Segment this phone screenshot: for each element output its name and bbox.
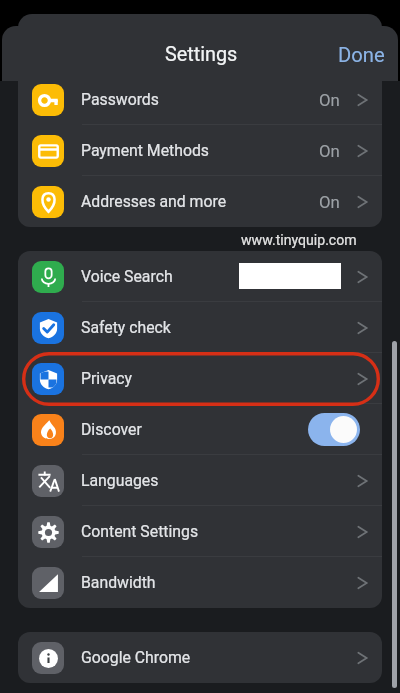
button[interactable]: Discover toggle [308,413,360,446]
button[interactable]: Payment Methods [18,125,382,176]
staticText: Voice Search [81,267,173,286]
button[interactable]: Content Settings [18,506,382,557]
button[interactable]: Privacy [18,353,382,404]
button[interactable]: Google Chrome [18,632,382,683]
staticText: Addresses and more [81,192,227,211]
staticText: Privacy [81,369,133,388]
button[interactable]: Languages [18,455,382,506]
button[interactable]: Discover [18,404,382,455]
staticText: On [319,192,340,212]
button[interactable]: Safety check [18,302,382,353]
staticText: Payment Methods [81,141,209,160]
staticText: Done [338,43,385,67]
staticText: Content Settings [81,522,199,541]
staticText: On [319,90,340,110]
staticText: www.tinyquip.com [241,232,357,249]
button[interactable]: Passwords [18,74,382,125]
staticText: Google Chrome [81,648,191,667]
staticText: Discover [81,420,142,439]
staticText: On [319,141,340,161]
button[interactable]: Addresses and more [18,176,382,227]
staticText: Passwords [81,90,159,109]
button[interactable]: Voice Search [18,251,382,302]
staticText: Bandwidth [81,573,156,592]
staticText: Safety check [81,318,171,337]
staticText: Settings [165,43,238,66]
button[interactable]: Done [322,37,398,73]
button[interactable]: Bandwidth [18,557,382,608]
staticText: Languages [81,471,159,490]
